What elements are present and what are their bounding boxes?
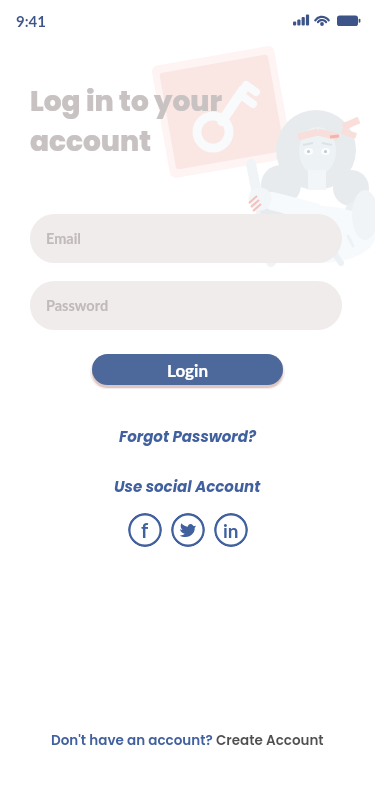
button[interactable]: Don't have an account? Create Account [51, 731, 324, 750]
staticText: in [223, 519, 239, 542]
button[interactable]: f [128, 513, 162, 547]
staticText: Login [167, 360, 208, 380]
button[interactable] [171, 513, 205, 547]
staticText: 9:41 [16, 12, 46, 30]
staticText: Password [46, 297, 109, 314]
button[interactable]: Forgot Password? [119, 426, 256, 447]
button[interactable]: in [214, 513, 248, 547]
staticText: f [141, 518, 149, 542]
button[interactable]: Login [92, 354, 283, 385]
staticText: Email [46, 230, 81, 247]
staticText: Log in to your account [30, 82, 222, 160]
button[interactable]: Email [30, 214, 342, 263]
staticText: Use social Account [114, 476, 261, 497]
button[interactable]: Password [30, 281, 342, 330]
